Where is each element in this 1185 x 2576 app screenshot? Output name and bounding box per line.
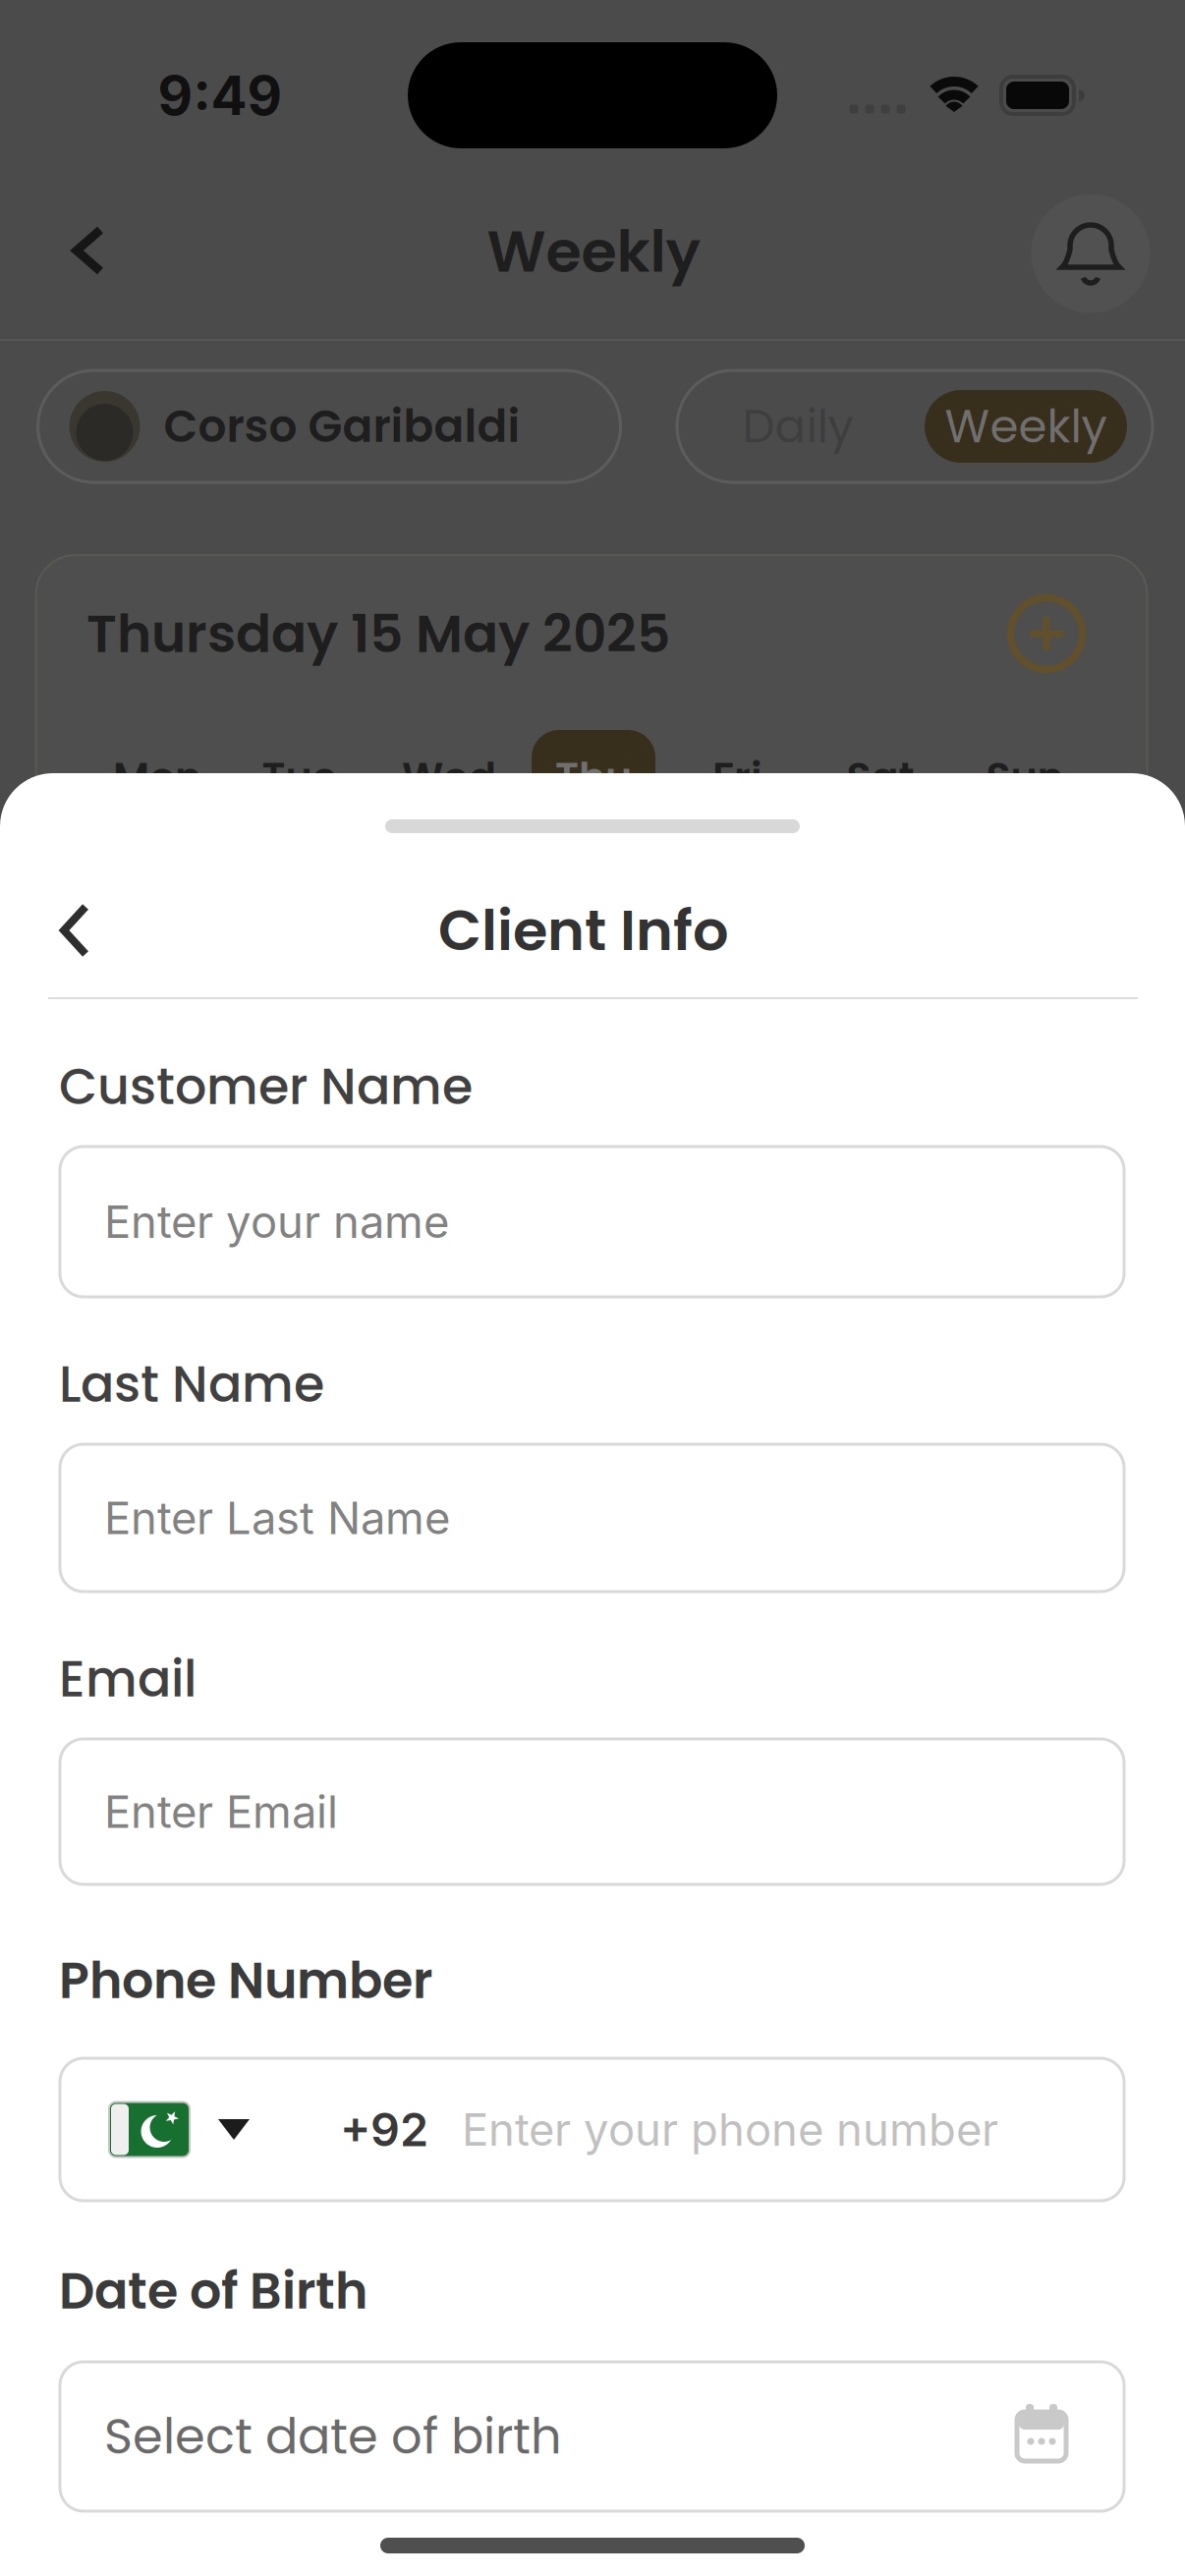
button[interactable]: Thu (530, 743, 657, 812)
staticText: Email (59, 1644, 197, 1714)
staticText: Corso Garibaldi (164, 395, 520, 458)
staticText: Enter your phone number (462, 2103, 998, 2156)
button[interactable]: Wed (385, 743, 513, 812)
staticText: Phone Number (59, 1946, 432, 2015)
button[interactable]: Select date of birth (60, 2362, 1124, 2511)
staticText: Date of Birth (59, 2256, 367, 2326)
button[interactable] (49, 211, 128, 290)
button[interactable] (1002, 589, 1091, 678)
button[interactable]: Sat (817, 743, 944, 812)
staticText: Enter Last Name (104, 1491, 450, 1545)
staticText: Thu (555, 749, 632, 806)
staticText: +92 (340, 2102, 428, 2157)
button[interactable]: Fri (673, 743, 801, 812)
staticText: Enter your name (104, 1195, 449, 1249)
button[interactable]: Weekly (925, 390, 1127, 463)
button[interactable]: Mon (93, 743, 221, 812)
staticText: Select date of birth (104, 2403, 562, 2470)
button[interactable]: Enter your name (60, 1147, 1124, 1297)
staticText: Enter Email (104, 1785, 338, 1839)
button[interactable]: Tue (236, 743, 364, 812)
button[interactable]: Enter Email (60, 1739, 1124, 1884)
staticText: Customer Name (59, 1052, 473, 1121)
staticText: Sun (986, 749, 1064, 806)
staticText: Weekly (945, 394, 1107, 458)
staticText: Mon (113, 749, 201, 806)
staticText: Sat (846, 749, 914, 806)
button[interactable] (532, 730, 655, 838)
staticText: Fri (712, 749, 762, 806)
button[interactable]: Daily (709, 377, 886, 476)
staticText: Daily (742, 394, 853, 458)
button[interactable]: Sun (961, 743, 1089, 812)
staticText: Weekly (487, 211, 700, 292)
staticText: Last Name (59, 1349, 324, 1419)
button[interactable] (1031, 194, 1150, 313)
button[interactable]: Corso Garibaldi (38, 370, 621, 482)
staticText: Tue (262, 749, 338, 806)
staticText: Client Info (438, 891, 729, 970)
button[interactable]: Enter Last Name (60, 1444, 1124, 1592)
button[interactable] (35, 891, 114, 970)
staticText: Wed (402, 749, 496, 806)
button[interactable]: +92 (60, 2058, 1124, 2201)
staticText: Thursday 15 May 2025 (86, 597, 670, 670)
staticText: 9:49 (158, 63, 282, 128)
